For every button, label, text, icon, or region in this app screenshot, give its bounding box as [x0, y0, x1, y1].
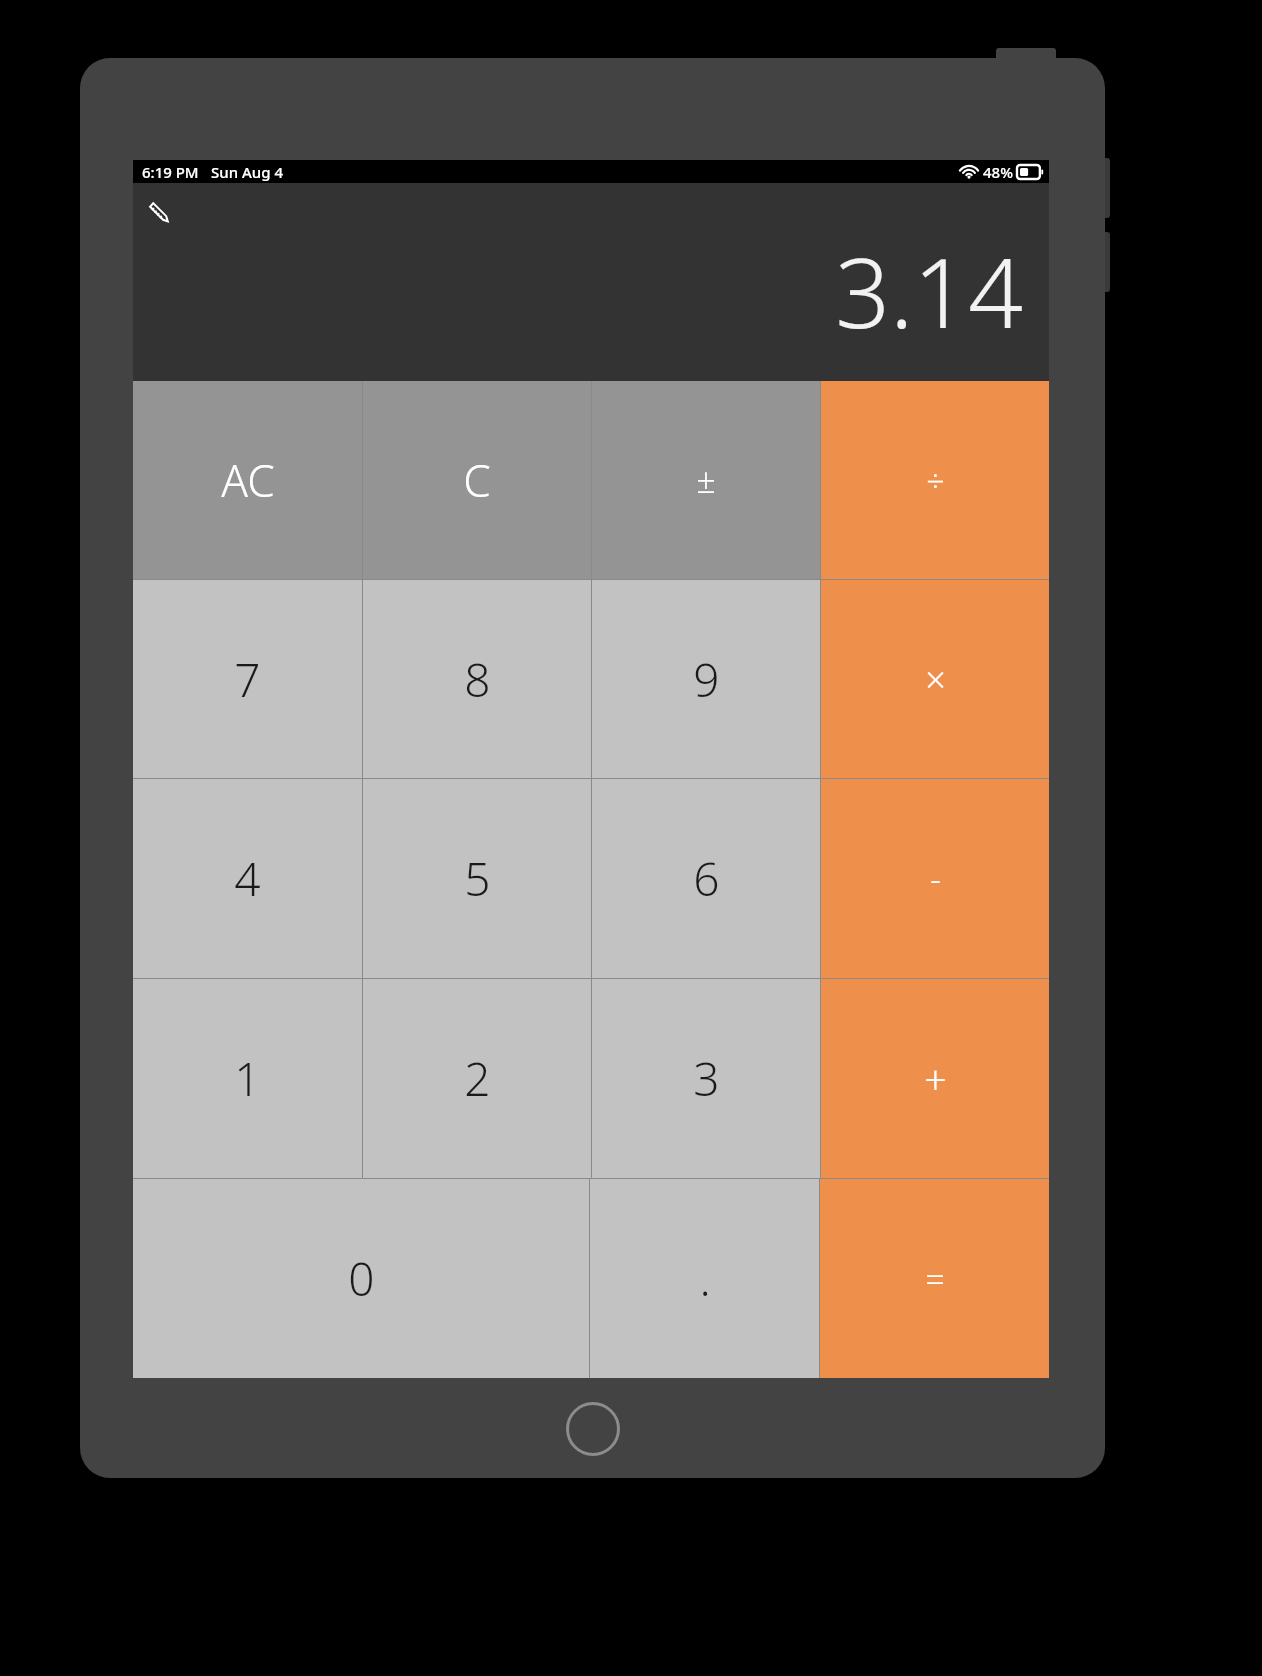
- button[interactable]: 8: [363, 580, 591, 778]
- button[interactable]: +: [821, 979, 1049, 1178]
- button[interactable]: ÷: [821, 381, 1049, 579]
- staticText: 7: [234, 648, 261, 711]
- staticText: ÷: [926, 458, 945, 502]
- button[interactable]: =: [820, 1179, 1049, 1378]
- button[interactable]: C: [363, 381, 591, 579]
- button[interactable]: 3: [592, 979, 820, 1178]
- staticText: +: [924, 1052, 947, 1106]
- staticText: 48%: [983, 162, 1013, 182]
- button[interactable]: Home: [566, 1402, 620, 1456]
- staticText: ±: [696, 457, 716, 503]
- button[interactable]: ×: [821, 580, 1049, 778]
- staticText: AC: [221, 450, 275, 510]
- staticText: 8: [464, 648, 491, 711]
- button[interactable]: ±: [592, 381, 820, 579]
- button[interactable]: 9: [592, 580, 820, 778]
- button[interactable]: 2: [363, 979, 591, 1178]
- button[interactable]: 5: [363, 779, 591, 978]
- staticText: 0: [348, 1247, 375, 1310]
- staticText: 3: [693, 1047, 720, 1110]
- staticText: 1: [234, 1047, 261, 1110]
- staticText: 5: [464, 847, 491, 910]
- button[interactable]: 7: [133, 580, 362, 778]
- staticText: 9: [693, 648, 720, 711]
- staticText: =: [925, 1256, 945, 1302]
- staticText: 3.14: [835, 225, 1023, 356]
- button[interactable]: 4: [133, 779, 362, 978]
- staticText: 4: [234, 847, 261, 910]
- staticText: 6:19 PM: [142, 162, 199, 182]
- staticText: ×: [925, 655, 946, 704]
- button[interactable]: Edit: [147, 199, 173, 225]
- staticText: 6: [693, 847, 720, 910]
- button[interactable]: 6: [592, 779, 820, 978]
- staticText: -: [930, 856, 941, 902]
- staticText: .: [699, 1247, 711, 1310]
- staticText: Sun Aug 4: [211, 162, 283, 182]
- button[interactable]: -: [821, 779, 1049, 978]
- button[interactable]: AC: [133, 381, 362, 579]
- staticText: 2: [464, 1047, 491, 1110]
- button[interactable]: 0: [133, 1179, 589, 1378]
- staticText: C: [463, 450, 491, 510]
- button[interactable]: 1: [133, 979, 362, 1178]
